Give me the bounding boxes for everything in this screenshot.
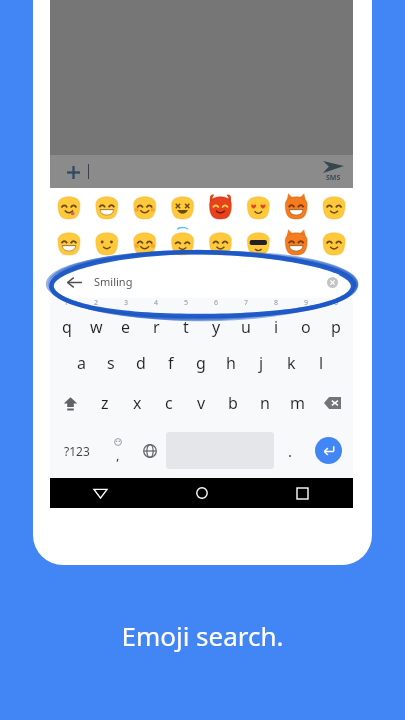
button[interactable]: k [276, 343, 306, 383]
button[interactable]: Backspace [313, 383, 351, 423]
staticText: j [259, 352, 264, 374]
button[interactable]: Change language [134, 423, 166, 478]
staticText: t [183, 316, 189, 338]
button[interactable]: e [111, 310, 141, 343]
button[interactable]: z [89, 383, 121, 423]
staticText: s [107, 352, 115, 374]
staticText: q [62, 316, 72, 338]
staticText: m [290, 392, 305, 414]
staticText: 2 [94, 298, 99, 308]
button[interactable]: v [185, 383, 217, 423]
staticText: 9 [304, 298, 309, 308]
button[interactable]: Shift [52, 383, 89, 423]
staticText: 1 [64, 298, 69, 308]
staticText: v [197, 392, 206, 414]
staticText: n [260, 392, 270, 414]
button[interactable]: Send SMS [323, 161, 344, 183]
button[interactable]: a [66, 343, 96, 383]
staticText: l [319, 352, 324, 374]
button[interactable]: g [186, 343, 216, 383]
button[interactable]: c [153, 383, 185, 423]
button[interactable]: Add attachment [61, 160, 85, 184]
button[interactable]: b [217, 383, 249, 423]
button[interactable]: x [121, 383, 153, 423]
button[interactable]: h [216, 343, 246, 383]
staticText: a [77, 352, 86, 374]
staticText: , [116, 446, 120, 464]
button[interactable]: m [281, 383, 313, 423]
other: Back [63, 271, 85, 293]
button[interactable]: r [141, 310, 171, 343]
staticText: 4 [154, 298, 159, 308]
staticText: . [288, 441, 293, 461]
staticText: w [90, 316, 103, 338]
staticText: u [241, 316, 251, 338]
button[interactable]: j [246, 343, 276, 383]
staticText: Smiling [94, 274, 133, 289]
button[interactable]: l [306, 343, 336, 383]
staticText: i [274, 316, 279, 338]
staticText: k [287, 352, 296, 374]
button[interactable]: q [52, 310, 81, 343]
staticText: o [301, 316, 311, 338]
button[interactable]: Clear search [322, 272, 342, 292]
staticText: 3 [124, 298, 129, 308]
button[interactable]: Home [151, 478, 252, 508]
staticText: f [168, 352, 174, 374]
button[interactable]: p [321, 310, 351, 343]
staticText: e [121, 316, 131, 338]
button[interactable]: i [261, 310, 291, 343]
button[interactable]: ?123 [52, 423, 102, 478]
button[interactable]: Back [50, 478, 151, 508]
staticText: 7 [244, 298, 249, 308]
button[interactable]: f [156, 343, 186, 383]
staticText: r [153, 316, 160, 338]
button[interactable]: . [274, 423, 306, 478]
button[interactable]: Back [50, 265, 353, 298]
button[interactable]: Emoji and comma [102, 423, 134, 478]
staticText: c [165, 392, 173, 414]
button[interactable]: Recents [252, 478, 353, 508]
staticText: h [226, 352, 236, 374]
staticText: SMS [326, 173, 341, 183]
button[interactable]: y [201, 310, 231, 343]
button[interactable]: n [249, 383, 281, 423]
button[interactable]: w [81, 310, 111, 343]
staticText: b [228, 392, 238, 414]
staticText: Emoji search. [0, 618, 405, 653]
button[interactable]: u [231, 310, 261, 343]
staticText: d [136, 352, 146, 374]
staticText: y [212, 316, 221, 338]
staticText: z [101, 392, 109, 414]
staticText: ?123 [64, 443, 90, 459]
button[interactable]: t [171, 310, 201, 343]
button[interactable]: d [126, 343, 156, 383]
staticText: 8 [274, 298, 279, 308]
button[interactable]: Enter [315, 437, 342, 464]
staticText: 0 [334, 298, 339, 308]
staticText: x [133, 392, 142, 414]
staticText: 5 [184, 298, 189, 308]
button[interactable]: o [291, 310, 321, 343]
staticText: 6 [214, 298, 219, 308]
staticText: p [331, 316, 341, 338]
button[interactable]: s [96, 343, 126, 383]
staticText: g [196, 352, 206, 374]
